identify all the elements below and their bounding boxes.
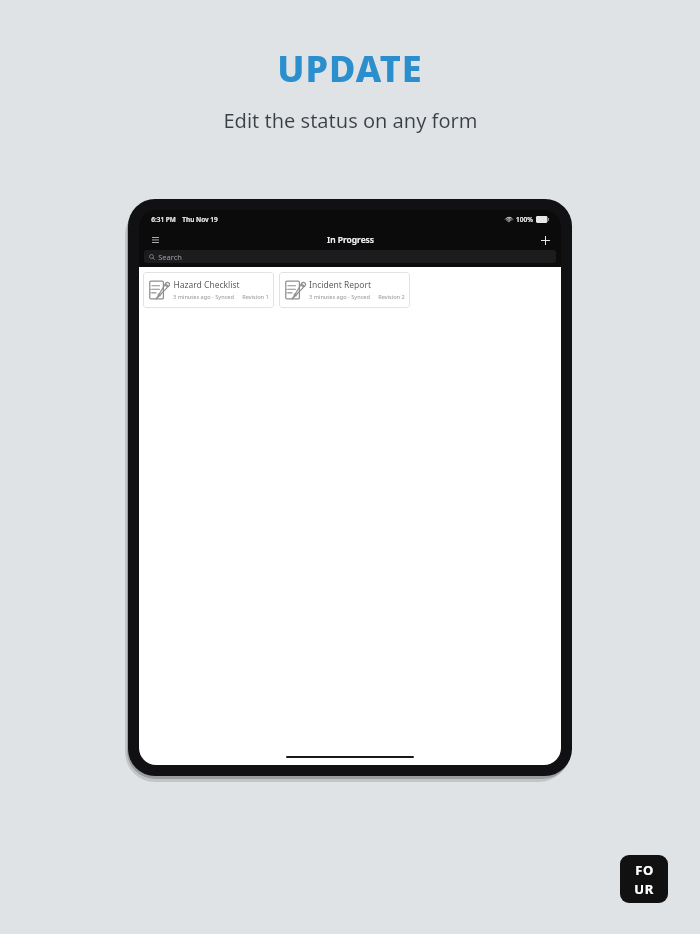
staticText: UR: [634, 880, 654, 898]
staticText: In Progress: [327, 234, 374, 246]
staticText: Revision 2: [378, 293, 405, 301]
staticText: Search: [158, 252, 182, 262]
button[interactable]: Add form: [537, 232, 553, 248]
staticText: Incident Report: [309, 279, 371, 291]
staticText: UPDATE: [277, 44, 423, 93]
staticText: Thu Nov 19: [182, 215, 218, 224]
staticText: 3 minutes ago - Synced: [309, 293, 370, 301]
staticText: Hazard Checklist: [173, 279, 240, 291]
button[interactable]: Incident Report: [279, 272, 410, 308]
staticText: 6:31 PM: [151, 215, 176, 224]
staticText: Edit the status on any form: [223, 107, 478, 134]
staticText: 100%: [516, 215, 533, 224]
staticText: 3 minutes ago - Synced: [173, 293, 234, 301]
button[interactable]: Menu: [147, 232, 163, 248]
button[interactable]: Hazard Checklist: [143, 272, 274, 308]
button[interactable]: FOUR logo: [620, 855, 668, 903]
button[interactable]: Search: [144, 250, 556, 263]
staticText: FO: [635, 861, 654, 879]
staticText: Revision 1: [242, 293, 269, 301]
